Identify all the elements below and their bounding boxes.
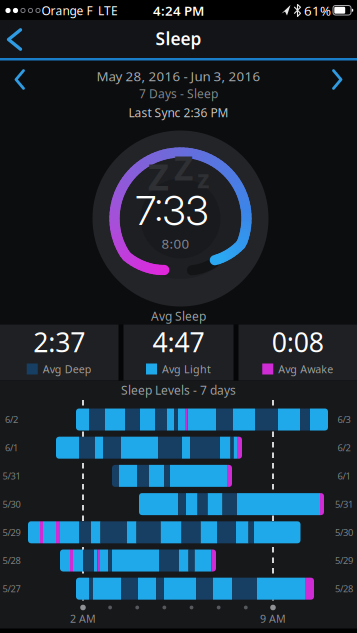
button[interactable]: 2:37 xyxy=(0,324,118,380)
staticText: Orange F xyxy=(41,2,92,18)
staticText: 2:37 xyxy=(33,324,85,360)
staticText: Avg Sleep xyxy=(151,308,206,324)
staticText: Sleep Levels - 7 days xyxy=(121,382,236,398)
staticText: 5/27 xyxy=(2,582,20,595)
staticText: 2 AM xyxy=(70,611,96,626)
button[interactable] xyxy=(0,19,32,59)
button[interactable]: 4:47 xyxy=(123,324,233,380)
staticText: 61% xyxy=(304,2,331,19)
staticText: 6/3 xyxy=(337,413,350,426)
staticText: 0:08 xyxy=(272,324,324,360)
staticText: 5/31 xyxy=(2,470,20,482)
staticText: 5/30 xyxy=(335,526,353,538)
staticText: 9 AM xyxy=(260,611,286,626)
staticText: 4:47 xyxy=(152,324,204,360)
staticText: 7:33 xyxy=(135,186,208,235)
button[interactable] xyxy=(325,64,355,94)
staticText: z xyxy=(197,162,209,195)
staticText: 4:24 PM xyxy=(153,2,204,19)
staticText: 6/2 xyxy=(5,413,18,426)
staticText: Avg Awake xyxy=(278,362,333,376)
staticText: 8:00 xyxy=(161,235,189,252)
staticText: Z xyxy=(174,145,193,190)
staticText: LTE xyxy=(98,2,118,18)
staticText: 5/28 xyxy=(335,582,353,595)
staticText: Last Sync 2:36 PM xyxy=(128,104,228,120)
staticText: Avg Light xyxy=(162,362,211,376)
staticText: 5/28 xyxy=(2,554,20,567)
staticText: Z xyxy=(148,153,169,200)
button[interactable] xyxy=(2,64,32,94)
staticText: Avg Deep xyxy=(43,362,92,376)
staticText: 5/31 xyxy=(335,498,353,510)
staticText: 7 Days - Sleep xyxy=(139,85,218,101)
staticText: 5/30 xyxy=(2,498,20,510)
button[interactable]: 0:08 xyxy=(238,324,357,380)
staticText: 5/29 xyxy=(2,526,20,538)
staticText: 5/29 xyxy=(335,554,353,567)
staticText: 6/2 xyxy=(337,441,350,454)
staticText: 6/1 xyxy=(337,470,350,482)
staticText: May 28, 2016 - Jun 3, 2016 xyxy=(96,67,260,85)
staticText: 6/1 xyxy=(5,441,18,454)
staticText: Sleep xyxy=(155,27,201,50)
